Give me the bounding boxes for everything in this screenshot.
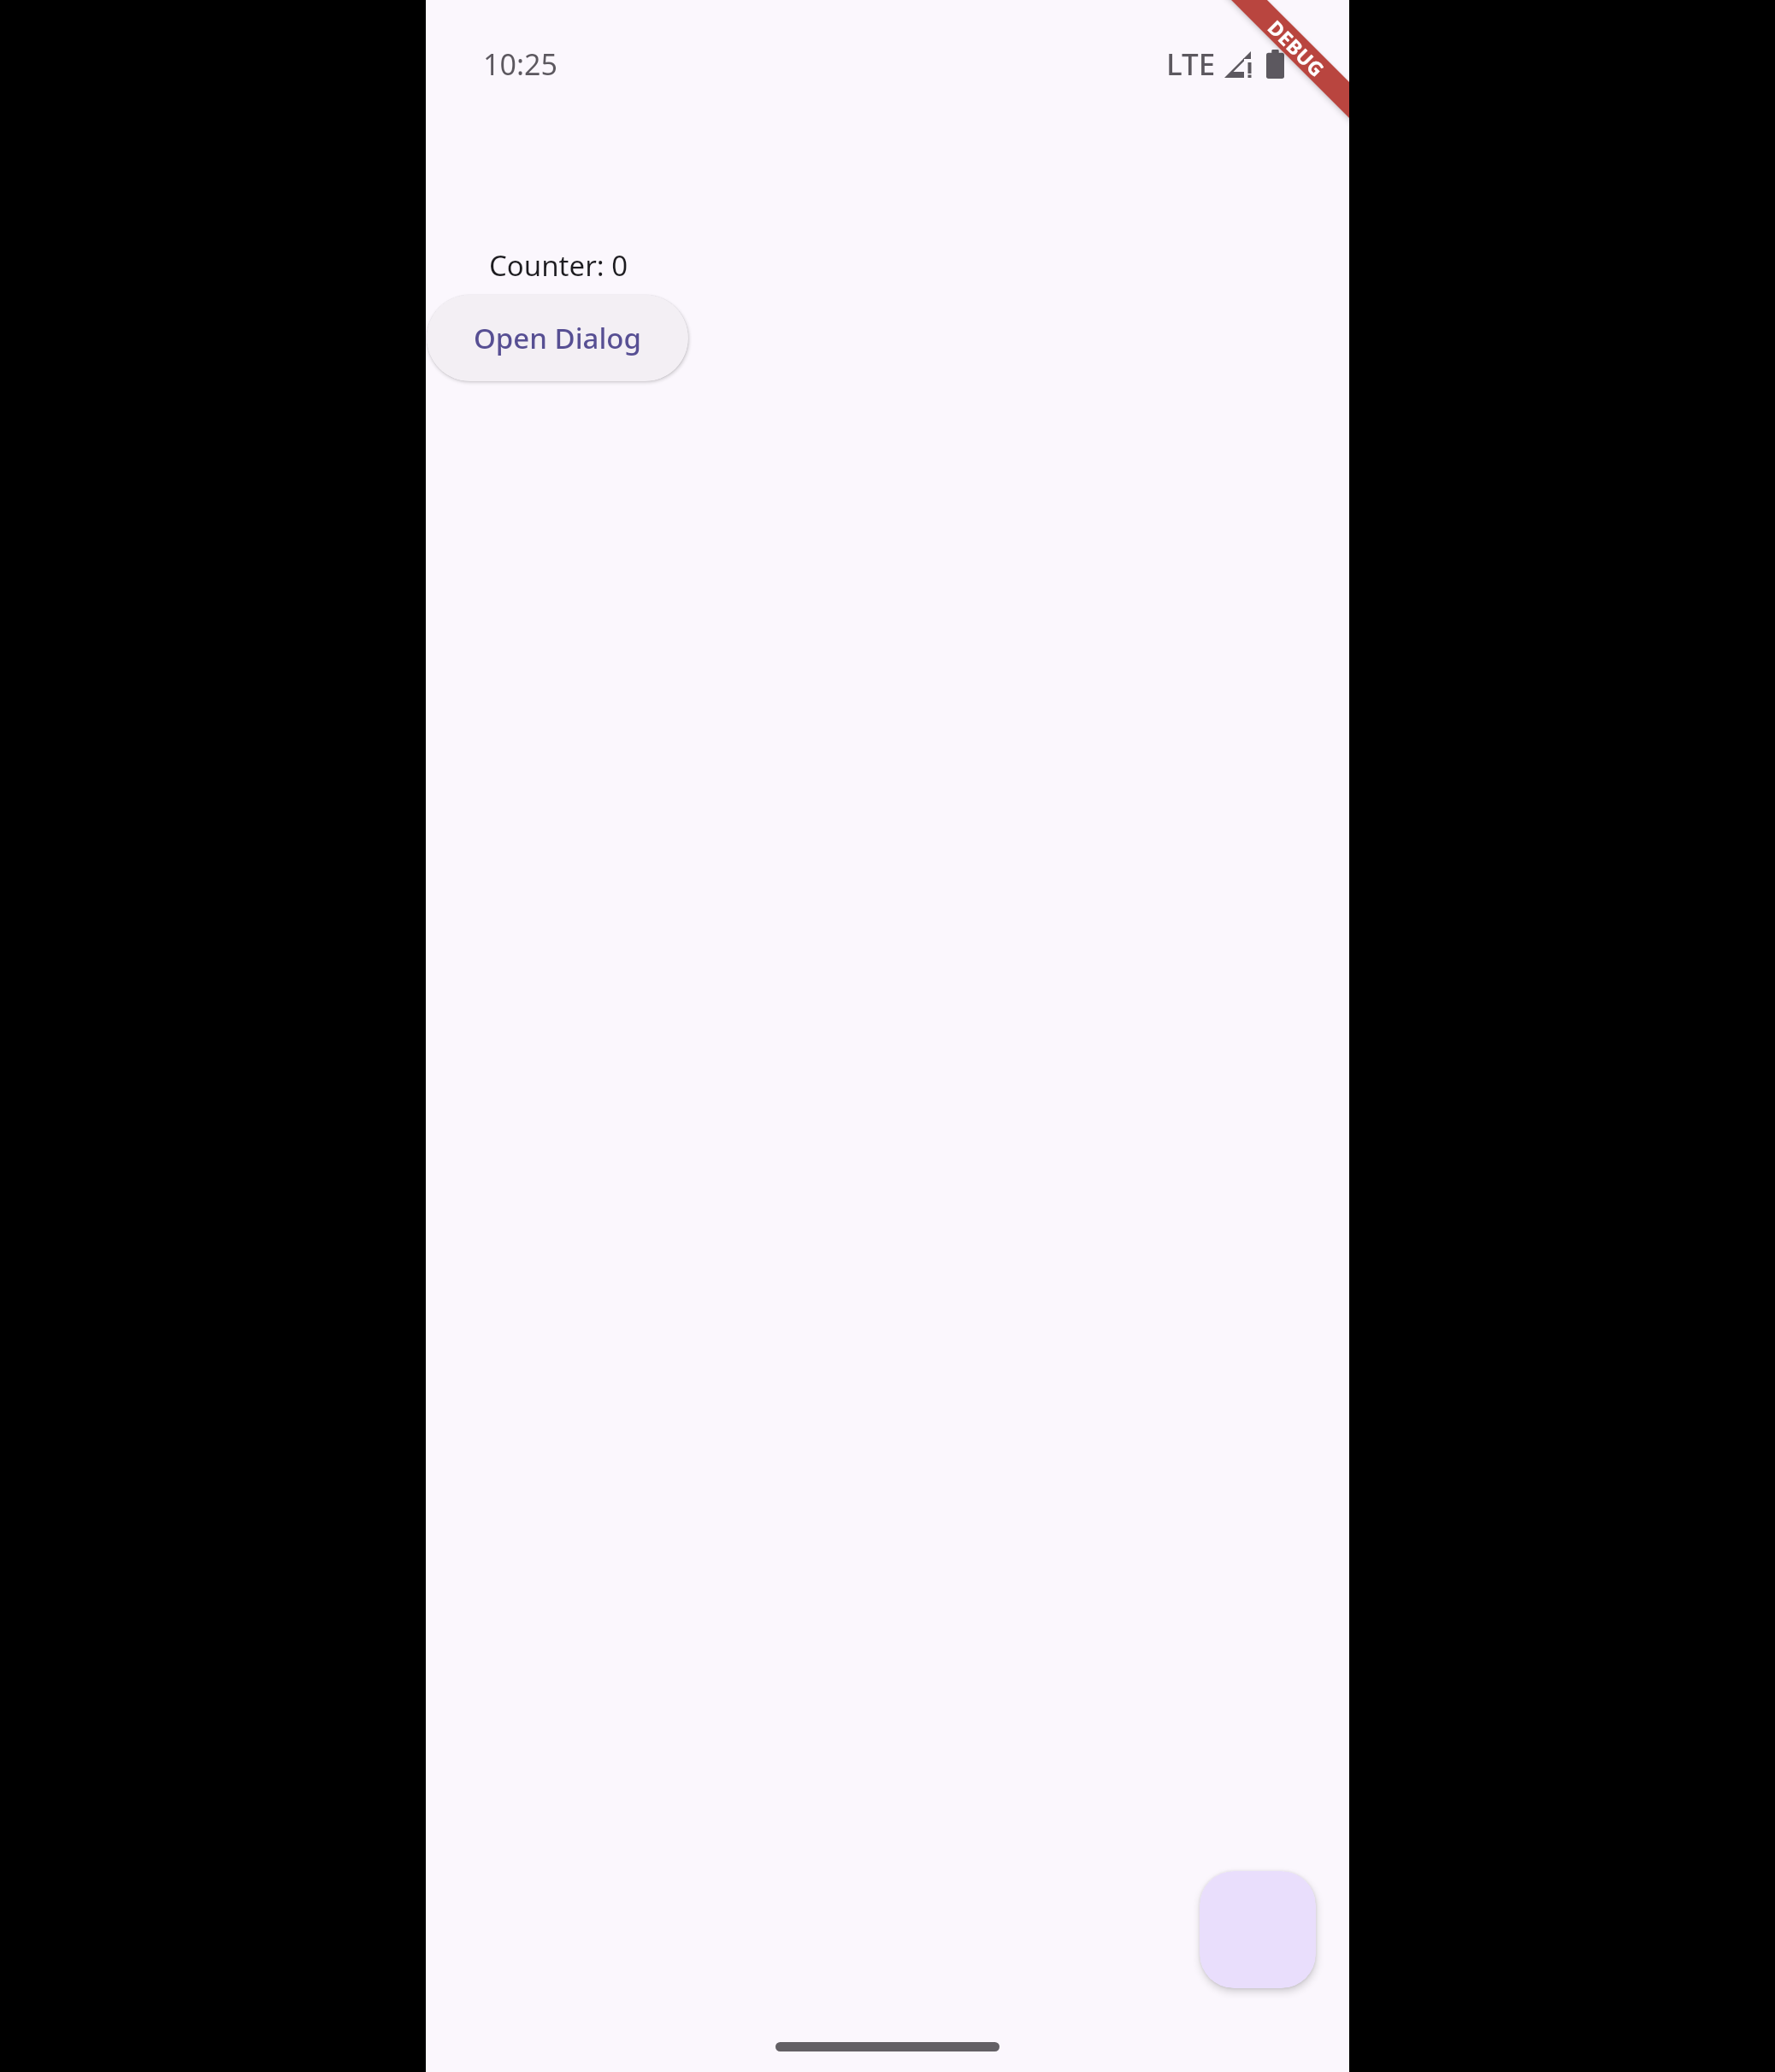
button[interactable]: Add — [1200, 1871, 1316, 1988]
staticText: DEBUG — [1263, 14, 1331, 82]
button[interactable]: Open Dialog — [427, 295, 688, 381]
staticText: Counter: 0 — [489, 246, 628, 285]
staticText: LTE — [1166, 44, 1216, 85]
staticText: 10:25 — [483, 44, 557, 84]
staticText: Open Dialog — [474, 319, 641, 357]
